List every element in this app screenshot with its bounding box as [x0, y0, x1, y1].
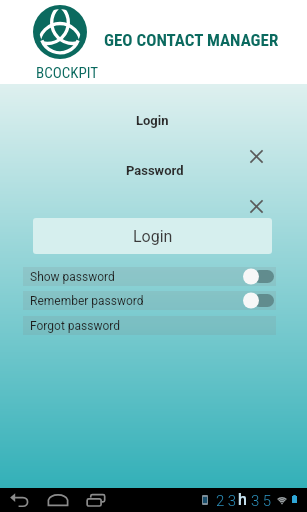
staticText: BCOCKPIT: [36, 64, 99, 82]
staticText: Forgot password: [30, 319, 121, 333]
button[interactable]: Forgot password: [23, 316, 276, 335]
button[interactable]: Back: [8, 488, 32, 512]
staticText: Remember password: [30, 294, 144, 308]
button[interactable]: Recents: [85, 488, 109, 512]
staticText: Login: [136, 113, 169, 128]
staticText: Login: [133, 227, 173, 246]
staticText: GEO CONTACT MANAGER: [104, 30, 279, 50]
button[interactable]: Show password: [23, 267, 276, 286]
staticText: h: [238, 490, 247, 509]
staticText: 35: [251, 492, 275, 510]
button[interactable]: Remember password: [23, 291, 276, 310]
staticText: 23: [216, 492, 240, 510]
button[interactable]: Home: [46, 488, 70, 512]
button[interactable]: Clear login: [250, 150, 263, 163]
staticText: Show password: [30, 270, 115, 284]
staticText: Password: [126, 163, 184, 178]
button[interactable]: Login: [33, 218, 272, 254]
button[interactable]: Clear password: [250, 200, 263, 213]
